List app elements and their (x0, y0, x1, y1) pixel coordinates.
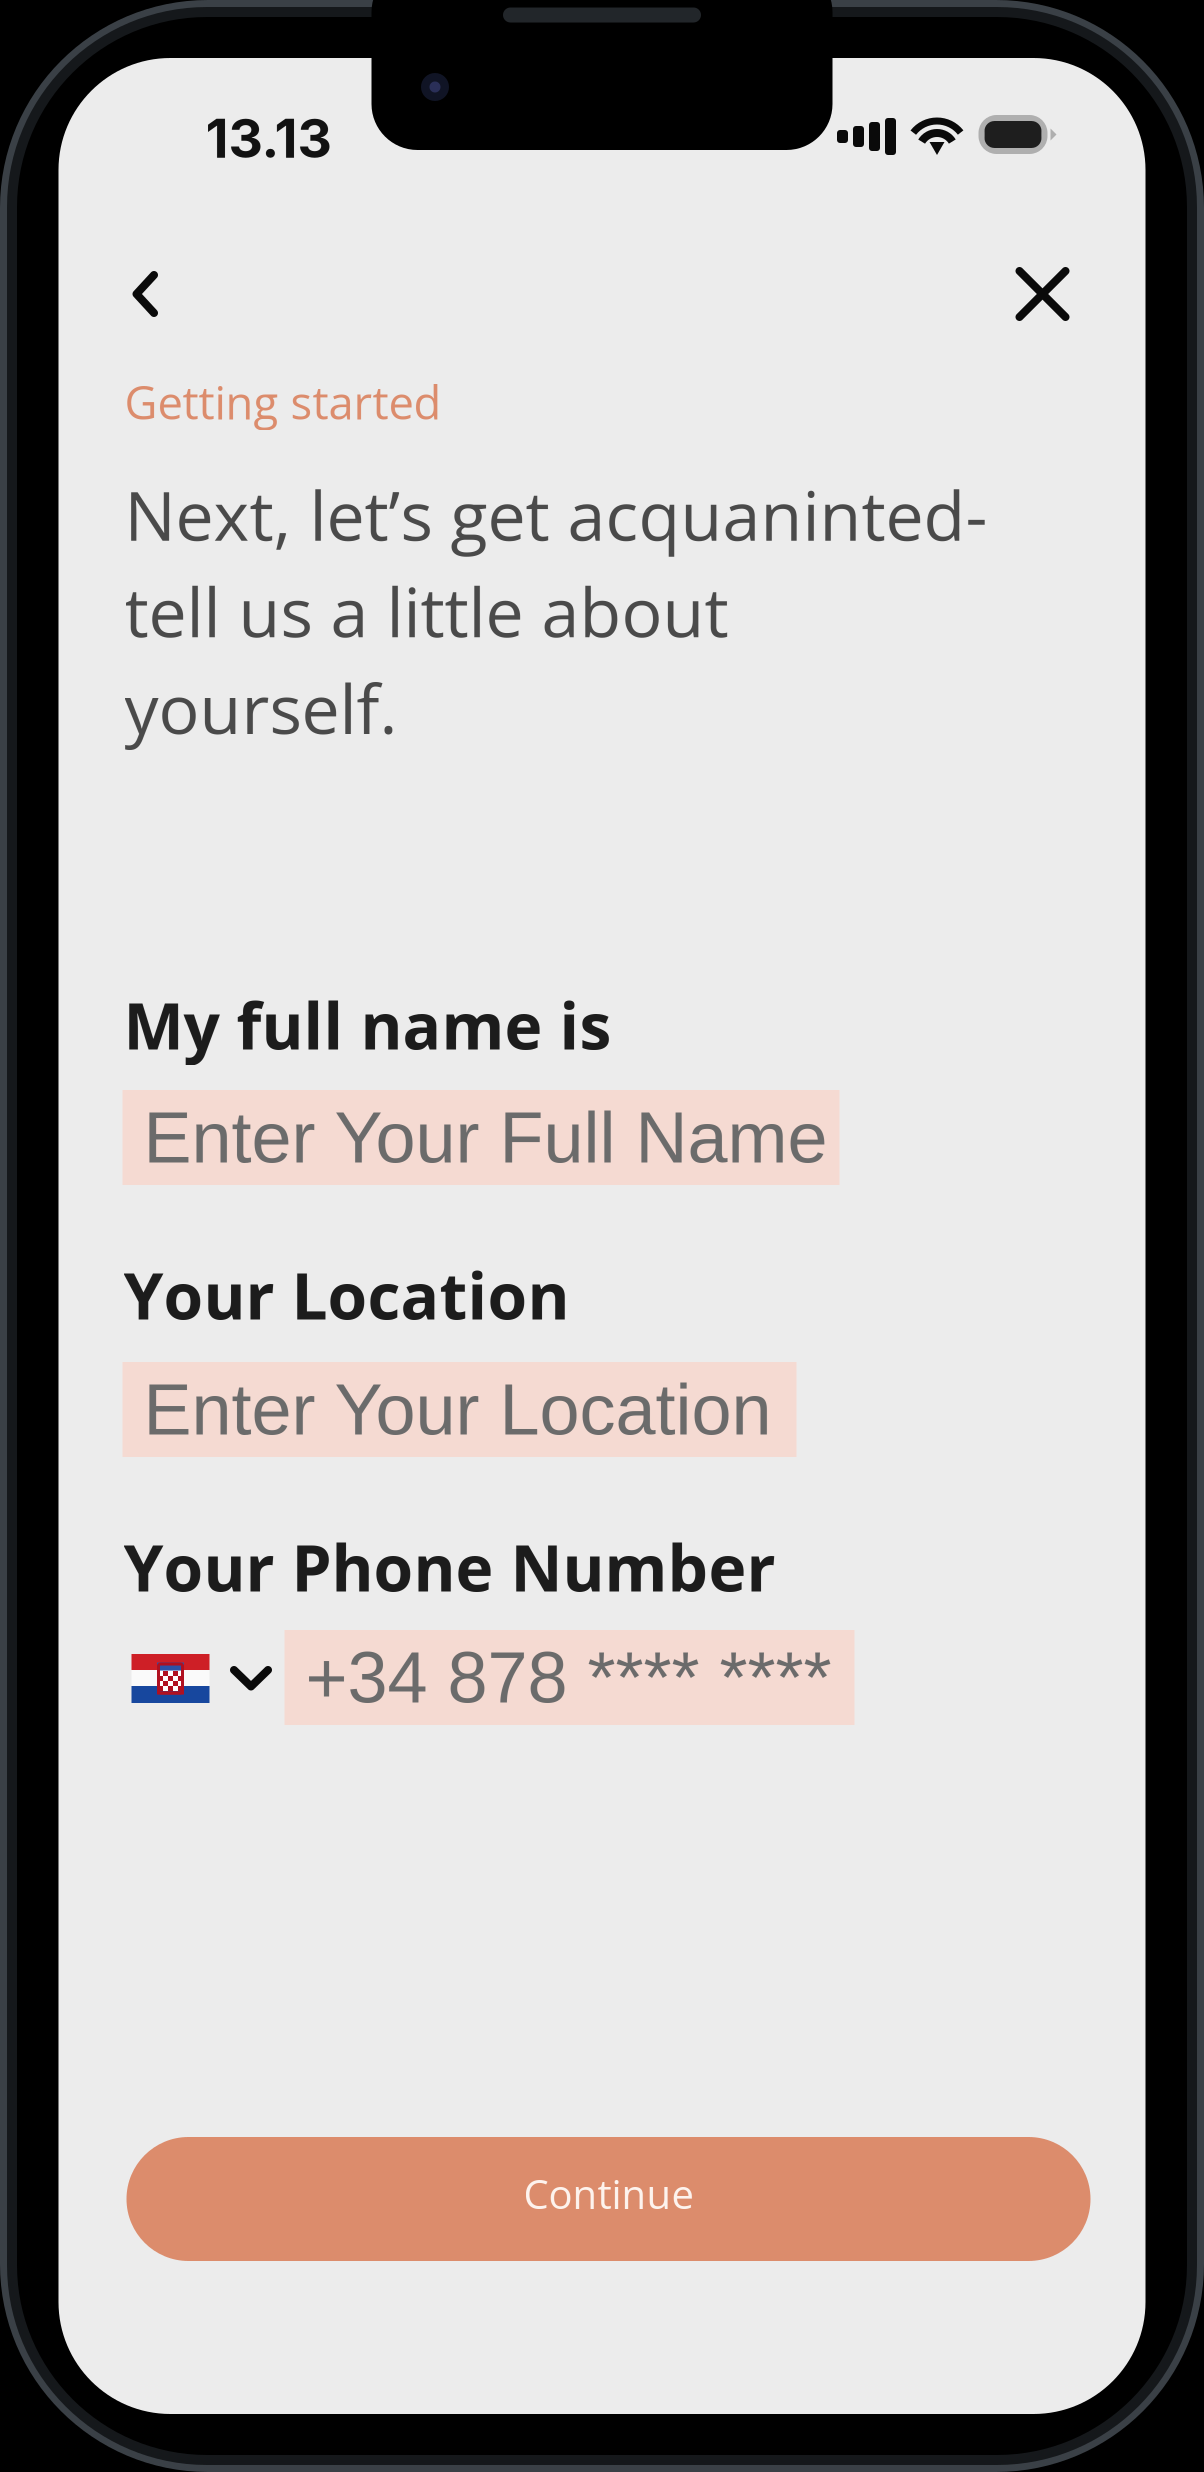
staticText: Your Location (123, 1251, 569, 1338)
staticText: Enter Your Full Name (143, 1097, 827, 1178)
button[interactable]: Continue (126, 2137, 1090, 2261)
button[interactable]: Back (112, 251, 182, 337)
staticText: My full name is (123, 981, 611, 1068)
staticText: +34 878 **** **** (305, 1637, 831, 1718)
staticText: Next, let’s get acquaninted-tell us a li… (124, 468, 987, 754)
staticText: Continue (523, 2166, 693, 2221)
button[interactable]: Select country code (131, 1654, 272, 1703)
staticText: 13.13 (205, 106, 331, 170)
staticText: Getting started (124, 371, 441, 433)
button[interactable]: Close (995, 247, 1089, 341)
staticText: Your Phone Number (123, 1523, 775, 1610)
staticText: Enter Your Location (143, 1369, 771, 1450)
